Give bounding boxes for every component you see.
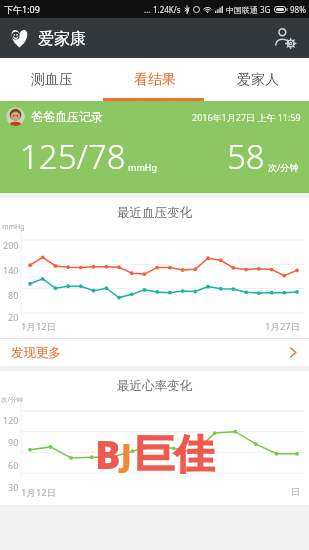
staticText: 1月12日 [21, 486, 57, 499]
staticText: 1月27日 [265, 320, 301, 333]
staticText: mmHg [128, 161, 158, 173]
staticText: mmHg [2, 222, 25, 232]
staticText: 120 [3, 414, 19, 426]
staticText: 60 [8, 459, 19, 471]
staticText: 140 [3, 264, 19, 276]
staticText: 2016年1月27日 上午 11:59 [192, 111, 301, 123]
staticText: 200 [3, 239, 19, 251]
staticText: 次/分钟 [268, 161, 299, 173]
staticText: 测血压 [31, 71, 73, 89]
button[interactable]: Account settings [268, 21, 302, 55]
button[interactable]: 发现更多 [0, 339, 309, 366]
staticText: 日 [291, 486, 301, 498]
staticText: 1.24K/s [153, 4, 181, 15]
staticText: 58 [227, 134, 265, 179]
staticText: 1月12日 [21, 320, 57, 333]
staticText: 中国联通 [226, 5, 258, 15]
staticText: ... [144, 4, 151, 15]
staticText: 发现更多 [11, 345, 61, 361]
staticText: 最近血压变化 [0, 205, 309, 221]
button[interactable]: 测血压 [0, 58, 103, 101]
staticText: 30 [8, 481, 19, 493]
staticText: 看结果 [134, 71, 176, 89]
staticText: 90 [8, 436, 19, 448]
staticText: 爸爸血压记录 [31, 109, 103, 124]
staticText: J [121, 434, 132, 475]
staticText: 巨佳 [134, 429, 214, 479]
staticText: 最近心率变化 [0, 378, 309, 394]
button[interactable]: 爸爸血压记录 [0, 101, 309, 193]
staticText: 3G [260, 4, 271, 15]
staticText: 80 [8, 289, 19, 301]
staticText: 爱家康 [38, 29, 86, 49]
staticText: 次/分钟 [1, 395, 23, 404]
staticText: 125/78 [20, 134, 126, 179]
button[interactable]: 爱家人 [206, 58, 309, 101]
staticText: 98% [290, 4, 306, 15]
staticText: 下午1:09 [4, 3, 40, 15]
button[interactable]: 看结果 [103, 58, 206, 101]
staticText: 爱家人 [237, 71, 279, 89]
staticText: B [95, 428, 121, 480]
staticText: 20 [8, 311, 19, 323]
